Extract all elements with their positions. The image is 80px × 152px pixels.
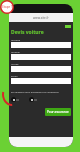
staticText: www.site.fr — [33, 16, 49, 20]
button[interactable]: Toggle — [29, 97, 37, 102]
button[interactable]: Pour assurance — [45, 108, 71, 116]
staticText: En validant vous acceptez nos conditions — [11, 90, 59, 93]
staticText: Annee — [11, 62, 19, 65]
staticText: Email — [11, 74, 18, 77]
button[interactable]: Address bar — [9, 13, 73, 22]
staticText: Pour assurance — [47, 110, 69, 114]
staticText: Modele — [11, 50, 20, 53]
staticText: Etape 1 — [2, 5, 13, 9]
staticText: Marque — [11, 38, 21, 41]
button[interactable]: Toggle — [11, 97, 19, 102]
staticText: Devis voiture — [11, 29, 44, 36]
